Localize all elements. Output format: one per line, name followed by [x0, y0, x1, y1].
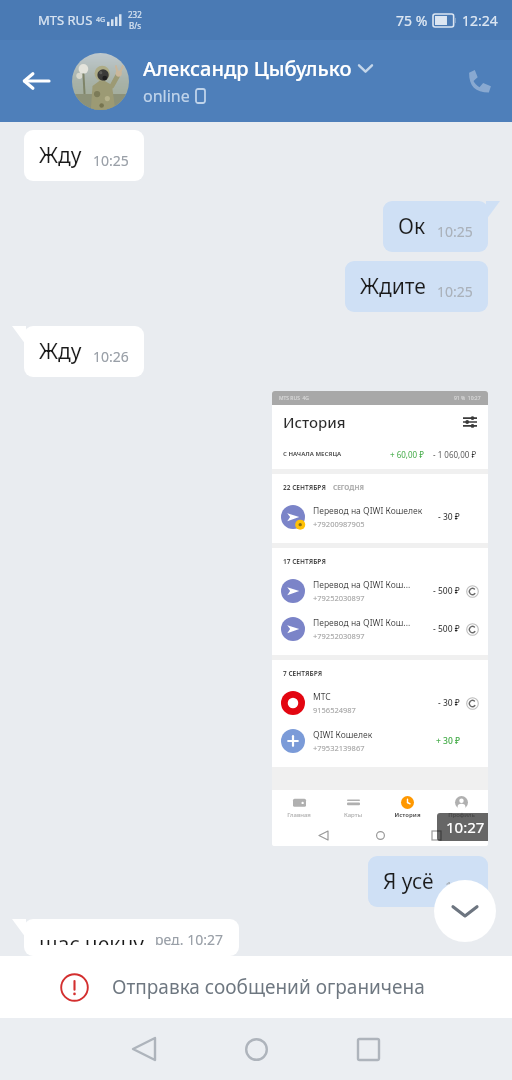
- staticText: - 30 ₽: [438, 511, 460, 523]
- staticText: МТС: [313, 691, 331, 703]
- button[interactable]: Профиль: [434, 796, 488, 819]
- button[interactable]: Ждите: [345, 261, 488, 312]
- staticText: Главная: [287, 811, 311, 819]
- staticText: 12:24: [462, 11, 498, 30]
- button[interactable]: щас чекну: [24, 919, 239, 956]
- button[interactable]: Photo attachment: [272, 391, 488, 846]
- staticText: 22 СЕНТЯБРЯ: [283, 483, 326, 492]
- staticText: +79200987905: [313, 519, 365, 529]
- staticText: MTS RUS: [38, 11, 93, 29]
- staticText: B/s: [129, 20, 142, 31]
- button[interactable]: МТС: [272, 684, 488, 722]
- staticText: Ждите: [360, 272, 426, 301]
- staticText: Александр Цыбулько: [143, 55, 352, 82]
- button[interactable]: Жду: [24, 326, 144, 377]
- button[interactable]: Перевод на QIWI Кош...: [272, 610, 488, 648]
- staticText: Профиль: [448, 811, 475, 819]
- staticText: С НАЧАЛА МЕСЯЦА: [283, 450, 342, 458]
- staticText: MTS RUS 4G: [279, 395, 309, 402]
- button[interactable]: Scroll to bottom: [434, 880, 496, 942]
- button[interactable]: Отправка сообщений ограничена: [0, 956, 512, 1018]
- staticText: 10:26: [93, 347, 129, 366]
- staticText: + 60,00 ₽: [390, 449, 424, 460]
- button[interactable]: QIWI Кошелек: [272, 722, 488, 760]
- staticText: 4G: [96, 15, 106, 25]
- button[interactable]: Я усё: [368, 856, 488, 907]
- staticText: 7 СЕНТЯБРЯ: [283, 669, 323, 678]
- staticText: Перевод на QIWI Кош...: [313, 579, 411, 591]
- staticText: Отправка сообщений ограничена: [112, 974, 425, 1000]
- button[interactable]: Главная: [272, 796, 326, 819]
- staticText: + 30 ₽: [436, 735, 460, 747]
- staticText: 10:25: [93, 151, 129, 170]
- staticText: История: [394, 811, 421, 819]
- staticText: online: [143, 85, 190, 107]
- staticText: Перевод на QIWI Кошелек: [313, 505, 423, 517]
- staticText: 232: [128, 9, 142, 20]
- staticText: 10:25: [437, 282, 473, 301]
- staticText: 10:25: [437, 222, 473, 241]
- staticText: 17 СЕНТЯБРЯ: [283, 557, 326, 566]
- staticText: QIWI Кошелек: [313, 729, 373, 741]
- staticText: - 500 ₽: [433, 585, 460, 597]
- button[interactable]: Перевод на QIWI Кош...: [272, 572, 488, 610]
- button[interactable]: Back: [0, 40, 72, 122]
- staticText: Перевод на QIWI Кош...: [313, 617, 411, 629]
- staticText: Я усё: [383, 867, 434, 896]
- staticText: 9156524987: [313, 705, 356, 715]
- staticText: Жду: [39, 141, 82, 170]
- button[interactable]: История: [380, 796, 434, 819]
- staticText: СЕГОДНЯ: [333, 483, 364, 492]
- staticText: История: [283, 412, 346, 432]
- button[interactable]: Recent apps: [312, 1018, 424, 1080]
- staticText: Жду: [39, 337, 82, 366]
- button[interactable]: Карты: [326, 796, 380, 819]
- button[interactable]: Ок: [383, 201, 488, 252]
- staticText: +79252030897: [313, 631, 365, 641]
- staticText: - 500 ₽: [433, 623, 460, 635]
- staticText: Ок: [398, 212, 426, 241]
- button[interactable]: Перевод на QIWI Кошелек: [272, 498, 488, 536]
- staticText: - 1 060,00 ₽: [433, 449, 477, 460]
- staticText: +79532139867: [313, 743, 365, 753]
- staticText: 75 %: [396, 11, 428, 30]
- staticText: ред. 10:27: [155, 930, 224, 945]
- button[interactable]: Back: [88, 1018, 200, 1080]
- staticText: +79252030897: [313, 593, 365, 603]
- button[interactable]: Александр Цыбулько: [143, 55, 448, 107]
- staticText: - 30 ₽: [438, 697, 460, 709]
- staticText: щас чекну: [39, 930, 144, 945]
- staticText: 10:27: [446, 817, 485, 837]
- button[interactable]: [72, 53, 129, 110]
- button[interactable]: Call: [448, 40, 512, 122]
- button[interactable]: Home: [200, 1018, 312, 1080]
- staticText: 91 % 10:27: [454, 395, 481, 402]
- staticText: Карты: [344, 811, 362, 819]
- button[interactable]: Жду: [24, 130, 144, 181]
- staticText: 10:2: [445, 877, 473, 896]
